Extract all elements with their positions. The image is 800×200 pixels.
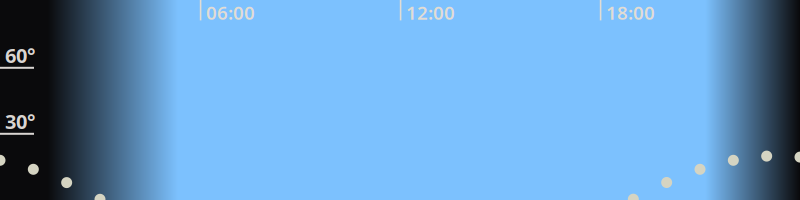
staticText: 12:00 [406,0,455,25]
staticText: 18:00 [606,0,655,25]
staticText: 06:00 [206,0,255,25]
staticText: 30° [5,108,35,134]
staticText: 60° [5,42,35,68]
